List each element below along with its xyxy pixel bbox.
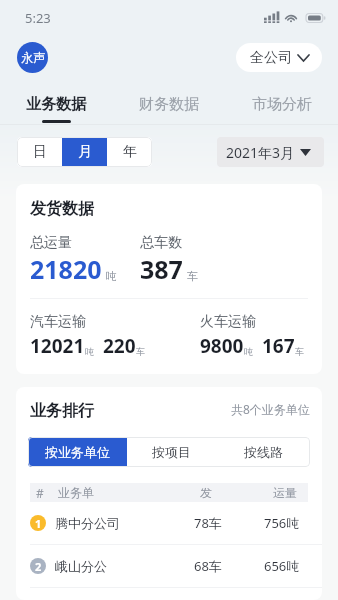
staticText: 756吨 (264, 514, 300, 532)
staticText: 运量 (273, 485, 297, 500)
staticText: 吨 (244, 346, 253, 357)
staticText: 峨山分公 (55, 558, 107, 574)
button[interactable]: 财务数据 (112, 81, 225, 125)
staticText: # (36, 485, 44, 501)
staticText: 78车 (194, 514, 222, 532)
staticText: 火车运输 (200, 313, 256, 331)
button[interactable]: 2021年3月 (217, 137, 324, 167)
staticText: 业务数据 (26, 95, 86, 114)
staticText: 9800 (200, 333, 244, 359)
button[interactable]: 月 (62, 137, 107, 167)
staticText: 财务数据 (139, 95, 199, 114)
staticText: 总车数 (140, 234, 182, 252)
button[interactable]: 1 (16, 502, 322, 544)
button[interactable]: 永声 (17, 42, 48, 73)
staticText: 按线路 (244, 444, 283, 460)
staticText: 167 (262, 333, 295, 359)
staticText: 68车 (194, 557, 222, 575)
staticText: 吨 (106, 269, 117, 283)
button[interactable]: 全公司 (236, 43, 322, 72)
staticText: 按项目 (152, 444, 191, 460)
staticText: 车 (187, 269, 198, 283)
staticText: 吨 (85, 346, 94, 357)
staticText: 车 (295, 346, 304, 357)
staticText: 21820 (30, 252, 102, 286)
staticText: 全公司 (250, 49, 292, 67)
staticText: 按业务单位 (45, 444, 110, 460)
staticText: 月 (78, 143, 92, 161)
staticText: 业务单 (58, 485, 94, 500)
staticText: 汽车运输 (30, 313, 86, 331)
button[interactable]: 日 (17, 137, 62, 167)
staticText: 业务排行 (30, 401, 94, 421)
button[interactable]: 按项目 (127, 437, 216, 467)
staticText: 总运量 (30, 234, 72, 252)
staticText: 年 (123, 143, 137, 161)
staticText: 12021 (30, 333, 85, 359)
staticText: 发货数据 (30, 199, 94, 219)
staticText: 日 (33, 143, 47, 161)
staticText: 387 (140, 252, 183, 286)
button[interactable]: 按业务单位 (28, 437, 127, 467)
button[interactable]: 2 (16, 545, 322, 587)
button[interactable]: 业务数据 (0, 81, 112, 125)
staticText: 220 (103, 333, 136, 359)
button[interactable]: 按线路 (216, 437, 310, 467)
button[interactable]: 市场分析 (225, 81, 338, 125)
button[interactable]: 年 (107, 137, 152, 167)
staticText: 市场分析 (252, 95, 312, 114)
staticText: 5:23 (25, 9, 51, 27)
staticText: 车 (136, 346, 145, 357)
staticText: 腾中分公司 (55, 515, 120, 531)
staticText: 共8个业务单位 (231, 401, 310, 417)
staticText: 656吨 (264, 557, 300, 575)
staticText: 2021年3月 (226, 143, 295, 162)
staticText: 永声 (21, 50, 45, 65)
staticText: 发 (200, 485, 212, 500)
staticText: 1 (35, 516, 42, 531)
staticText: 2 (35, 559, 42, 574)
